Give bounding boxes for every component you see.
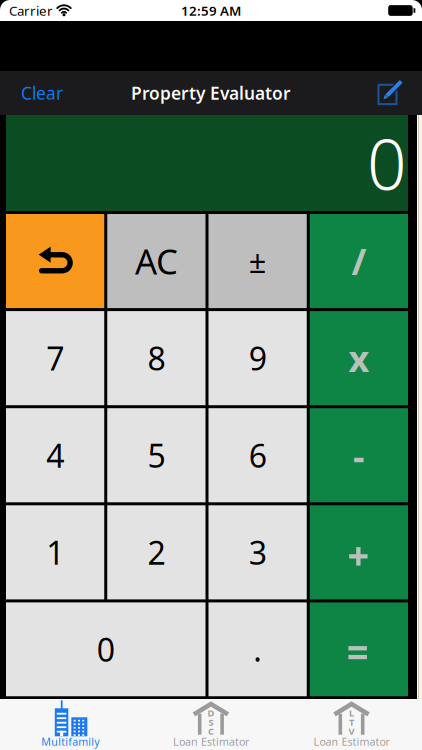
staticText: Loan Estimator	[313, 734, 389, 749]
button[interactable]: Undo	[6, 214, 104, 308]
staticText: Clear	[21, 81, 63, 104]
staticText: S	[208, 716, 213, 728]
button[interactable]: -	[310, 408, 408, 502]
button[interactable]: D	[141, 699, 281, 750]
staticText: 2	[147, 531, 165, 574]
button[interactable]: 1	[6, 505, 104, 599]
button[interactable]: /	[310, 214, 408, 308]
button[interactable]: L	[281, 699, 422, 750]
staticText: C	[208, 725, 214, 737]
button[interactable]: Add	[310, 505, 408, 599]
staticText: .	[253, 628, 262, 671]
staticText: 4	[46, 434, 64, 476]
button[interactable]: 0	[6, 602, 205, 696]
staticText: 3	[249, 531, 267, 574]
button[interactable]: 2	[107, 505, 205, 599]
button[interactable]: 5	[107, 408, 205, 502]
staticText: Carrier	[9, 2, 53, 19]
staticText: 1	[46, 531, 64, 574]
button[interactable]: 8	[107, 311, 205, 405]
staticText: 0	[97, 628, 115, 671]
staticText: 5	[147, 434, 165, 476]
button[interactable]: 9	[208, 311, 307, 405]
staticText: T	[349, 716, 354, 728]
staticText: 0	[367, 117, 407, 209]
staticText: Loan Estimator	[173, 734, 249, 749]
button[interactable]: Multifamily	[0, 699, 141, 750]
staticText: x	[348, 334, 369, 382]
button[interactable]: 7	[6, 311, 104, 405]
staticText: L	[349, 707, 354, 719]
staticText: AC	[135, 238, 178, 284]
button[interactable]: Equals	[310, 602, 408, 696]
button[interactable]: .	[208, 602, 307, 696]
staticText: Multifamily	[41, 734, 99, 749]
staticText: 6	[249, 434, 267, 476]
button[interactable]: 3	[208, 505, 307, 599]
button[interactable]: x	[310, 311, 408, 405]
button[interactable]: Clear	[0, 81, 63, 104]
staticText: V	[348, 725, 354, 737]
button[interactable]: ±	[208, 214, 307, 308]
staticText: D	[207, 707, 214, 719]
staticText: 9	[249, 337, 267, 379]
staticText: -	[353, 431, 365, 479]
button[interactable]: AC	[107, 214, 205, 308]
staticText: /	[351, 237, 366, 285]
staticText: 8	[147, 337, 165, 379]
staticText: 7	[46, 337, 64, 379]
button[interactable]: Compose	[374, 79, 422, 107]
staticText: Property Evaluator	[131, 81, 291, 104]
staticText: 12:59 AM	[181, 2, 241, 19]
button[interactable]: 6	[208, 408, 307, 502]
staticText: ±	[249, 241, 267, 281]
button[interactable]: 4	[6, 408, 104, 502]
